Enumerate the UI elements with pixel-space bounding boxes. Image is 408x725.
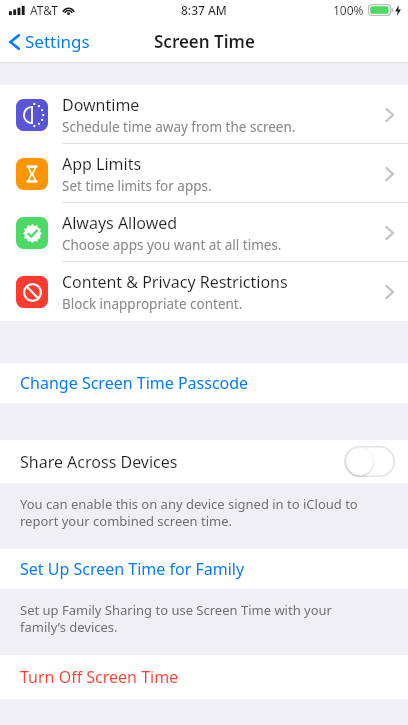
staticText: Set up Family Sharing to use Screen Time… bbox=[20, 601, 378, 636]
staticText: Always Allowed bbox=[62, 212, 178, 234]
button[interactable] bbox=[344, 446, 395, 477]
staticText: Block inappropriate content. bbox=[62, 295, 243, 313]
button[interactable]: Set Up Screen Time for Family bbox=[0, 549, 408, 589]
button[interactable]: Turn Off Screen Time bbox=[0, 655, 408, 699]
button[interactable]: App Limits bbox=[0, 144, 408, 203]
staticText: 8:37 AM bbox=[181, 2, 227, 18]
button[interactable]: Share Across Devices bbox=[0, 440, 408, 483]
staticText: Set Up Screen Time for Family bbox=[20, 558, 245, 580]
staticText: Schedule time away from the screen. bbox=[62, 118, 296, 136]
button[interactable]: Settings bbox=[0, 24, 98, 59]
button[interactable]: Change Screen Time Passcode bbox=[0, 363, 408, 403]
staticText: Settings bbox=[25, 30, 90, 53]
staticText: Downtime bbox=[62, 94, 140, 116]
staticText: App Limits bbox=[62, 153, 142, 175]
staticText: AT&T bbox=[30, 2, 58, 18]
staticText: Screen Time bbox=[154, 30, 255, 53]
staticText: Choose apps you want at all times. bbox=[62, 236, 282, 254]
staticText: Set time limits for apps. bbox=[62, 177, 212, 195]
button[interactable]: Downtime bbox=[0, 85, 408, 144]
button[interactable]: Always Allowed bbox=[0, 203, 408, 262]
staticText: Share Across Devices bbox=[20, 451, 178, 473]
staticText: Turn Off Screen Time bbox=[20, 666, 179, 688]
staticText: Change Screen Time Passcode bbox=[20, 372, 249, 394]
button[interactable]: Content & Privacy Restrictions bbox=[0, 262, 408, 321]
staticText: 100% bbox=[333, 2, 364, 18]
staticText: You can enable this on any device signed… bbox=[20, 495, 378, 530]
staticText: Content & Privacy Restrictions bbox=[62, 271, 288, 293]
